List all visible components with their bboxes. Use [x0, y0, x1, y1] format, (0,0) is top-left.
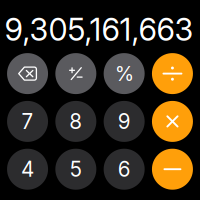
button[interactable]: % — [104, 53, 145, 94]
button[interactable]: 6 — [104, 149, 145, 190]
staticText: % — [115, 61, 134, 86]
staticText: 4 — [21, 157, 34, 182]
button[interactable]: Divide — [152, 53, 193, 94]
button[interactable]: Minus — [152, 149, 193, 190]
staticText: 8 — [69, 109, 82, 134]
button[interactable]: Multiply — [152, 101, 193, 142]
button[interactable]: 7 — [7, 101, 48, 142]
staticText: 9,305,161,663 — [4, 11, 193, 48]
button[interactable]: 4 — [7, 149, 48, 190]
staticText: 6 — [118, 157, 131, 182]
button[interactable]: Delete — [7, 53, 48, 94]
staticText: 7 — [22, 109, 34, 134]
button[interactable]: Plus minus — [55, 53, 96, 94]
button[interactable]: 9 — [104, 101, 145, 142]
button[interactable]: 5 — [55, 149, 96, 190]
staticText: 5 — [70, 157, 82, 182]
staticText: 9 — [118, 109, 131, 134]
button[interactable]: 8 — [55, 101, 96, 142]
